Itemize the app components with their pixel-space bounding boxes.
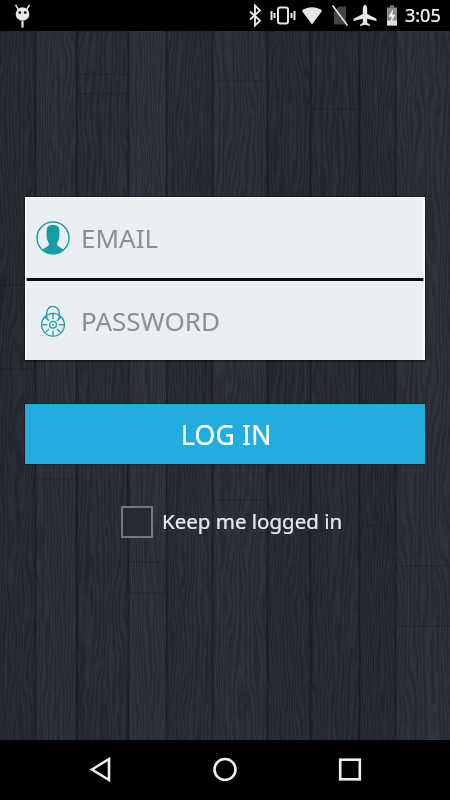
button[interactable]: Keep me logged in bbox=[121, 506, 343, 538]
staticText: LOG IN bbox=[181, 417, 272, 453]
button[interactable]: PASSWORD bbox=[25, 281, 425, 360]
staticText: Keep me logged in bbox=[162, 507, 343, 535]
staticText: EMAIL bbox=[81, 220, 159, 255]
staticText: 3:05 bbox=[405, 3, 441, 28]
button[interactable]: Recent apps bbox=[300, 740, 450, 800]
staticText: PASSWORD bbox=[81, 303, 220, 338]
button[interactable]: Back bbox=[0, 740, 150, 800]
button[interactable]: EMAIL bbox=[25, 197, 425, 278]
button[interactable]: LOG IN bbox=[25, 404, 425, 464]
button[interactable]: Home bbox=[150, 740, 300, 800]
